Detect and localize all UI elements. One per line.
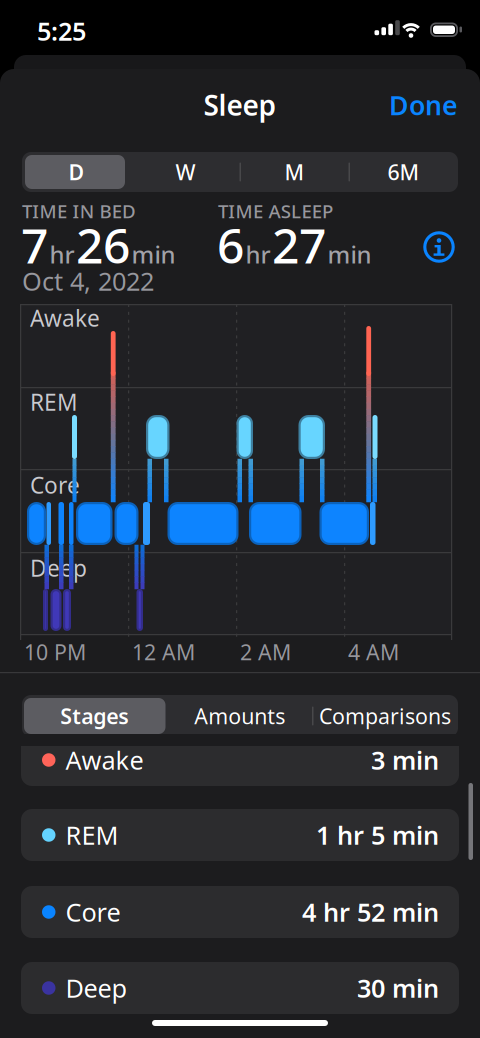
staticText: D	[68, 158, 84, 186]
staticText: Deep	[65, 971, 127, 1005]
staticText: Done	[389, 87, 458, 123]
staticText: TIME IN BED	[22, 199, 136, 223]
staticText: 2 AM	[240, 638, 291, 666]
staticText: 26	[76, 213, 130, 277]
button[interactable]: M	[244, 154, 344, 190]
staticText: min	[327, 238, 371, 270]
staticText: Awake	[30, 303, 100, 333]
button[interactable]: Awake	[21, 734, 459, 786]
staticText: Core	[65, 895, 120, 929]
button[interactable]: W	[135, 154, 235, 190]
staticText: Oct 4, 2022	[22, 264, 154, 298]
staticText: 4 hr 52 min	[302, 895, 439, 929]
staticText: 12 AM	[132, 638, 195, 666]
staticText: Awake	[65, 743, 143, 777]
staticText: 10 PM	[24, 638, 86, 666]
staticText: 30 min	[357, 971, 439, 1005]
staticText: 27	[272, 213, 326, 277]
staticText: min	[131, 238, 175, 270]
staticText: REM	[30, 387, 78, 417]
staticText: 7	[21, 213, 48, 277]
button[interactable]: Core	[21, 886, 459, 938]
button[interactable]: Stages	[24, 697, 165, 735]
staticText: W	[175, 158, 195, 186]
staticText: Comparisons	[319, 702, 451, 730]
staticText: Core	[30, 470, 80, 500]
staticText: 4 AM	[348, 638, 399, 666]
staticText: Sleep	[203, 86, 276, 124]
staticText: 5:25	[37, 14, 86, 48]
staticText: M	[284, 158, 304, 186]
button[interactable]: Done	[348, 90, 458, 120]
staticText: REM	[65, 818, 118, 852]
button[interactable]	[422, 230, 456, 264]
button[interactable]: REM	[21, 809, 459, 861]
staticText: 3 min	[371, 743, 439, 777]
staticText: TIME ASLEEP	[218, 199, 333, 223]
button[interactable]: Comparisons	[314, 697, 455, 735]
staticText: Deep	[30, 553, 87, 583]
staticText: 6M	[387, 158, 419, 186]
staticText: Stages	[60, 702, 129, 730]
button[interactable]: D	[26, 154, 126, 190]
staticText: hr	[49, 238, 74, 270]
staticText: hr	[245, 238, 270, 270]
button[interactable]: Amounts	[169, 697, 310, 735]
staticText: 1 hr 5 min	[316, 818, 439, 852]
staticText: 6	[217, 213, 244, 277]
staticText: Amounts	[194, 702, 285, 730]
button[interactable]: Deep	[21, 962, 459, 1014]
button[interactable]: 6M	[353, 154, 453, 190]
